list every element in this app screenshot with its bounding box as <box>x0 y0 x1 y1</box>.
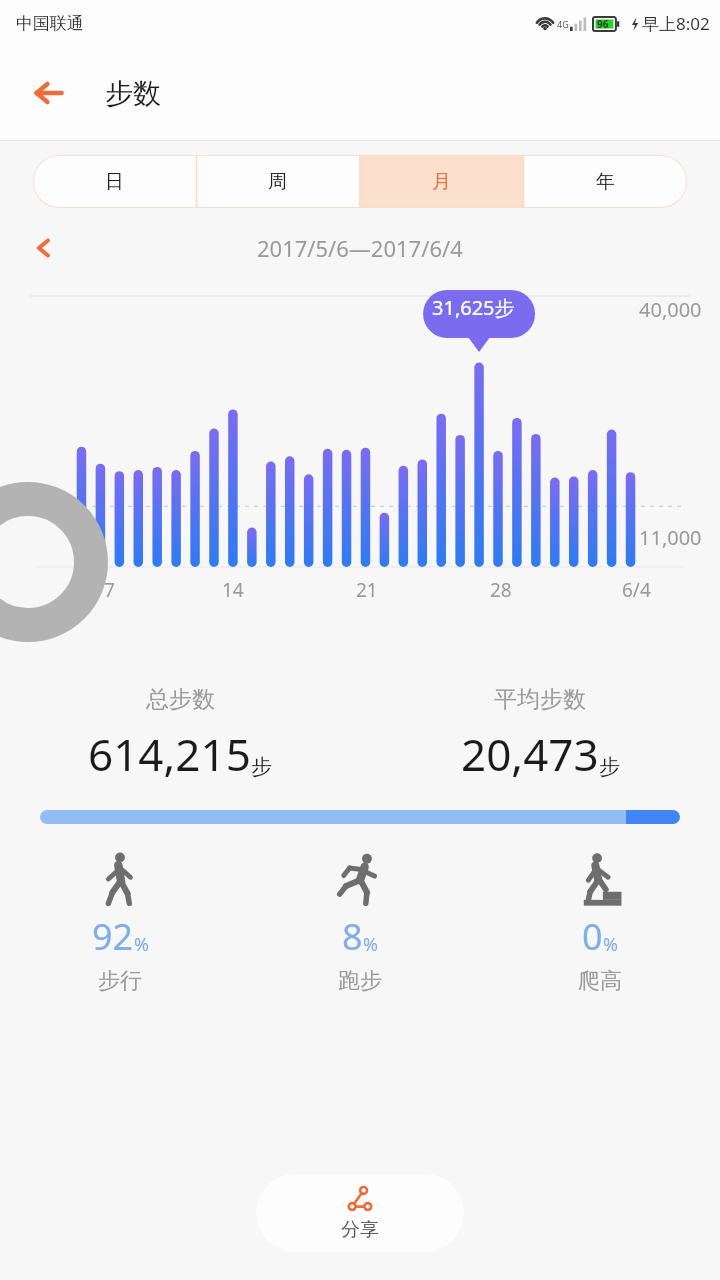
staticText: 14 <box>222 577 244 603</box>
staticText: 步 <box>251 754 272 780</box>
staticText: 11,000 <box>639 524 702 551</box>
staticText: 0 <box>582 912 603 961</box>
button[interactable]: 8 <box>240 846 480 999</box>
staticText: 分享 <box>341 1218 379 1242</box>
staticText: 中国联通 <box>16 13 84 34</box>
button[interactable]: 周 <box>196 155 359 208</box>
staticText: 614,215 <box>88 724 251 784</box>
button[interactable]: 92 <box>0 846 240 999</box>
staticText: 步 <box>599 754 620 780</box>
staticText: 年 <box>596 170 615 194</box>
staticText: 步行 <box>98 967 142 995</box>
staticText: 21 <box>356 577 378 603</box>
staticText: 40,000 <box>639 296 702 323</box>
button[interactable]: 年 <box>523 155 687 208</box>
staticText: 6/4 <box>622 577 651 603</box>
staticText: % <box>603 932 618 957</box>
staticText: 跑步 <box>338 967 382 995</box>
staticText: 28 <box>490 577 512 603</box>
button[interactable]: 0 <box>480 846 720 999</box>
staticText: 周 <box>268 170 287 194</box>
staticText: 早上8:02 <box>642 12 710 35</box>
staticText: % <box>363 932 378 957</box>
button[interactable]: 上一月 <box>22 226 66 270</box>
staticText: % <box>134 932 149 957</box>
staticText: 5/7 <box>86 577 115 603</box>
button[interactable]: 分享 <box>256 1174 464 1252</box>
staticText: 平均步数 <box>494 685 586 714</box>
button[interactable]: 日 <box>33 155 196 208</box>
staticText: 月 <box>432 170 451 194</box>
staticText: 2017/5/6—2017/6/4 <box>257 233 463 263</box>
staticText: 步数 <box>105 76 161 111</box>
button[interactable]: 月 <box>359 155 523 208</box>
staticText: 总步数 <box>146 685 215 714</box>
staticText: 爬高 <box>578 967 622 995</box>
staticText: 日 <box>105 170 124 194</box>
button[interactable]: 返回 <box>24 69 72 117</box>
staticText: 8 <box>342 912 363 961</box>
staticText: 4G <box>557 18 569 30</box>
staticText: 31,625步 <box>432 294 515 321</box>
staticText: 96 <box>597 17 609 31</box>
staticText: 20,473 <box>461 724 599 784</box>
staticText: 92 <box>92 912 134 961</box>
